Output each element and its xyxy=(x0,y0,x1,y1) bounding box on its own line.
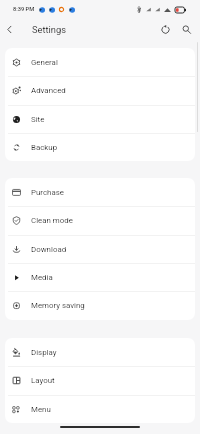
button[interactable]: Site xyxy=(5,105,195,133)
button[interactable]: Layout xyxy=(5,366,195,394)
button[interactable]: Download xyxy=(5,235,195,263)
staticText: Clean mode xyxy=(31,216,73,225)
button[interactable]: Display xyxy=(5,338,195,366)
staticText: Download xyxy=(31,245,67,254)
staticText: Purchase xyxy=(31,188,64,197)
staticText: Advanced xyxy=(31,86,66,95)
staticText: Site xyxy=(31,115,45,124)
button[interactable]: Purchase xyxy=(5,178,195,206)
button[interactable]: Back xyxy=(0,19,19,40)
button[interactable]: Advanced xyxy=(5,76,195,104)
button[interactable]: Backup xyxy=(5,133,195,161)
staticText: Backup xyxy=(31,143,58,152)
button[interactable]: General xyxy=(5,48,195,76)
staticText: Media xyxy=(31,273,53,282)
staticText: 8:39 PM xyxy=(13,6,35,13)
staticText: General xyxy=(31,58,58,67)
staticText: Display xyxy=(31,348,57,357)
button[interactable]: Menu xyxy=(5,395,195,423)
staticText: Settings xyxy=(32,24,66,35)
button[interactable]: Media xyxy=(5,263,195,291)
button[interactable]: Memory saving xyxy=(5,291,195,319)
staticText: Menu xyxy=(31,405,51,414)
staticText: Memory saving xyxy=(31,301,85,310)
button[interactable]: Clean mode xyxy=(5,206,195,234)
button[interactable]: Search xyxy=(176,19,197,40)
staticText: Layout xyxy=(31,376,55,385)
button[interactable]: Restore xyxy=(155,19,176,40)
